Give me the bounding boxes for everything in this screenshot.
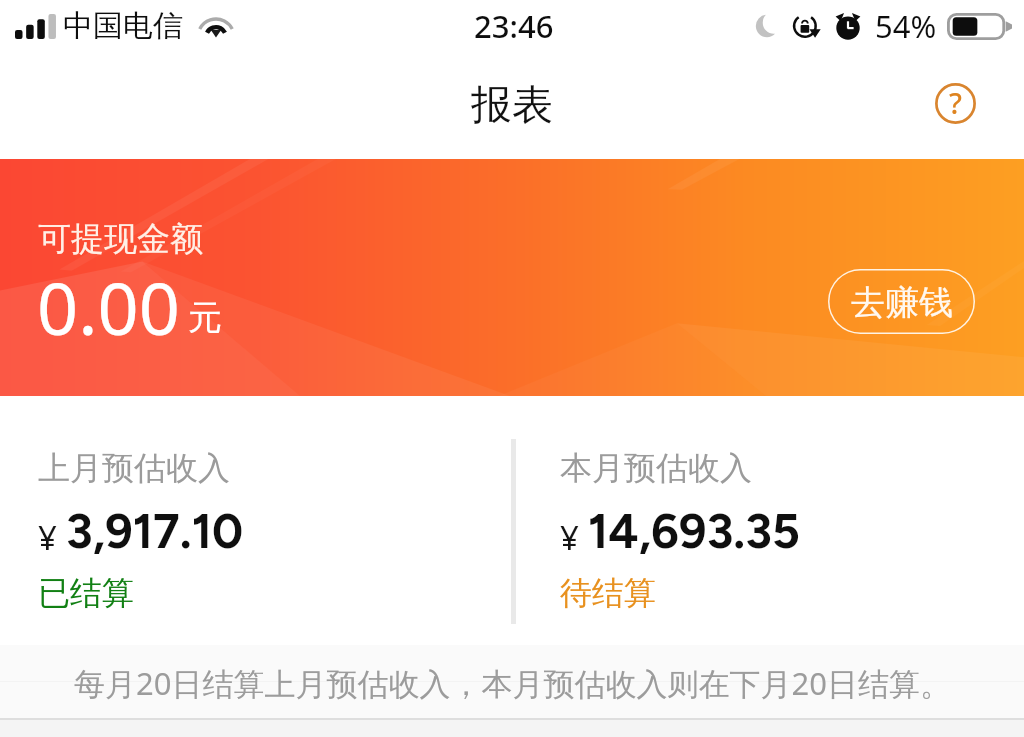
- staticText: 中国电信: [63, 7, 183, 45]
- staticText: 可提现金额: [38, 218, 203, 260]
- button[interactable]: Help: [929, 77, 981, 129]
- staticText: 已结算: [38, 573, 134, 613]
- staticText: 54%: [875, 5, 937, 47]
- staticText: 待结算: [560, 573, 656, 613]
- staticText: 14,693.35: [588, 502, 800, 560]
- staticText: 0.00: [37, 258, 180, 356]
- staticText: 每月20日结算上月预估收入，本月预估收入则在下月20日结算。: [74, 662, 951, 704]
- staticText: ¥: [38, 515, 57, 560]
- staticText: 本月预估收入: [560, 448, 752, 488]
- staticText: 上月预估收入: [38, 448, 230, 488]
- staticText: 23:46: [474, 5, 554, 47]
- staticText: 去赚钱: [851, 281, 953, 324]
- staticText: 3,917.10: [66, 502, 244, 560]
- staticText: 报表: [471, 80, 553, 132]
- staticText: ¥: [560, 515, 579, 560]
- staticText: ?: [949, 83, 962, 122]
- staticText: 元: [188, 296, 222, 339]
- button[interactable]: 去赚钱: [828, 269, 975, 334]
